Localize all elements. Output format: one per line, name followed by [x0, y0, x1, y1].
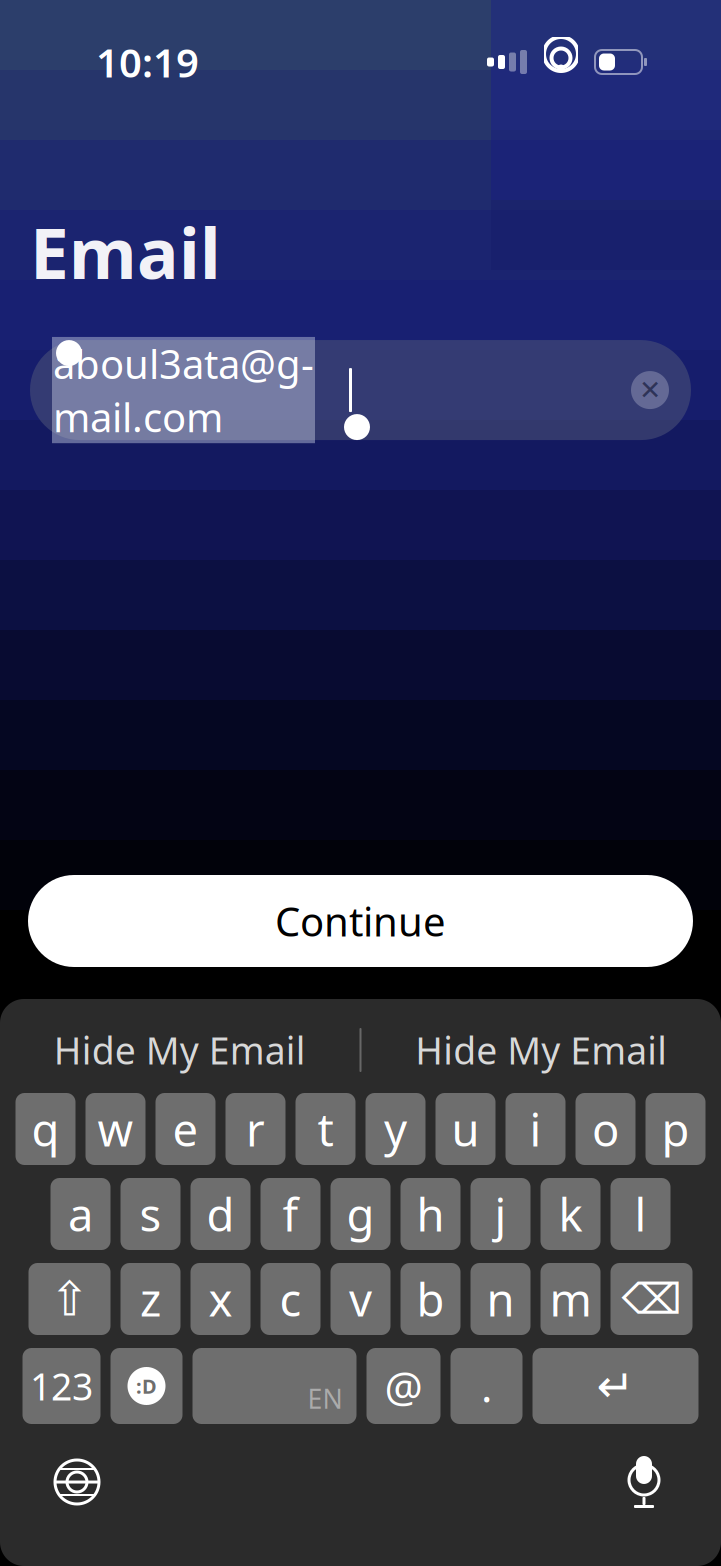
staticText: y	[384, 1099, 407, 1159]
button[interactable]: f	[260, 1178, 320, 1250]
staticText: a	[68, 1184, 93, 1244]
button[interactable]: Shift	[28, 1263, 110, 1335]
button[interactable]: a	[50, 1178, 110, 1250]
button[interactable]: Next keyboard	[32, 1442, 122, 1522]
button[interactable]: o	[575, 1093, 635, 1165]
button[interactable]: Hide My Email	[0, 1014, 359, 1086]
button[interactable]: m	[540, 1263, 600, 1335]
staticText: Hide My Email	[415, 1025, 667, 1075]
staticText: 10:19	[96, 35, 199, 88]
button[interactable]: d	[190, 1178, 250, 1250]
staticText: .	[481, 1358, 492, 1414]
staticText: aboul3ata@gmail.com	[53, 337, 314, 443]
staticText: i	[529, 1099, 541, 1159]
button[interactable]: b	[400, 1263, 460, 1335]
staticText: x	[208, 1269, 232, 1329]
button[interactable]: Email address	[30, 340, 691, 440]
staticText: b	[416, 1269, 444, 1329]
staticText: k	[558, 1184, 582, 1244]
staticText: EN	[307, 1381, 342, 1416]
button[interactable]: Return	[532, 1348, 698, 1424]
staticText: 123	[30, 1361, 93, 1411]
staticText: ⇧	[49, 1272, 89, 1326]
staticText: l	[634, 1184, 646, 1244]
staticText: m	[549, 1269, 591, 1329]
button[interactable]: Numbers	[22, 1348, 100, 1424]
button[interactable]: j	[470, 1178, 530, 1250]
staticText: g	[346, 1184, 374, 1244]
staticText: n	[486, 1269, 514, 1329]
button[interactable]: i	[505, 1093, 565, 1165]
staticText: Continue	[275, 894, 446, 947]
staticText: :D	[136, 1373, 157, 1399]
staticText: Email	[30, 206, 221, 298]
button[interactable]: q	[15, 1093, 75, 1165]
button[interactable]: @	[366, 1348, 440, 1424]
button[interactable]: e	[155, 1093, 215, 1165]
button[interactable]: k	[540, 1178, 600, 1250]
staticText: r	[246, 1099, 265, 1159]
button[interactable]: s	[120, 1178, 180, 1250]
button[interactable]: p	[645, 1093, 705, 1165]
button[interactable]: z	[120, 1263, 180, 1335]
button[interactable]: t	[295, 1093, 355, 1165]
button[interactable]: x	[190, 1263, 250, 1335]
staticText: c	[279, 1269, 301, 1329]
staticText: ↵	[596, 1360, 634, 1412]
button[interactable]: Delete	[610, 1263, 692, 1335]
staticText: p	[661, 1099, 689, 1159]
staticText: q	[31, 1099, 59, 1159]
button[interactable]: Hide My Email	[361, 1014, 721, 1086]
button[interactable]: g	[330, 1178, 390, 1250]
staticText: d	[206, 1184, 234, 1244]
staticText: f	[282, 1184, 298, 1244]
button[interactable]: Continue	[28, 875, 693, 967]
button[interactable]: c	[260, 1263, 320, 1335]
button[interactable]: y	[365, 1093, 425, 1165]
button[interactable]: v	[330, 1263, 390, 1335]
staticText: z	[140, 1269, 161, 1329]
button[interactable]: Dictation	[599, 1442, 689, 1522]
button[interactable]: .	[450, 1348, 522, 1424]
button[interactable]: h	[400, 1178, 460, 1250]
button[interactable]: n	[470, 1263, 530, 1335]
button[interactable]: l	[610, 1178, 670, 1250]
staticText: e	[172, 1099, 198, 1159]
button[interactable]: u	[435, 1093, 495, 1165]
staticText: s	[139, 1184, 161, 1244]
button[interactable]: w	[85, 1093, 145, 1165]
staticText: @	[384, 1358, 422, 1414]
staticText: o	[592, 1099, 619, 1159]
staticText: j	[494, 1184, 506, 1244]
button[interactable]: r	[225, 1093, 285, 1165]
staticText: u	[451, 1099, 479, 1159]
staticText: ✕	[639, 375, 661, 405]
staticText: Hide My Email	[54, 1025, 306, 1075]
staticText: v	[349, 1269, 372, 1329]
staticText: t	[317, 1099, 333, 1159]
staticText: ⌫	[621, 1275, 681, 1323]
button[interactable]: Space	[192, 1348, 356, 1424]
staticText: w	[97, 1099, 133, 1159]
button[interactable]: Emoji	[110, 1348, 182, 1424]
staticText: h	[416, 1184, 444, 1244]
